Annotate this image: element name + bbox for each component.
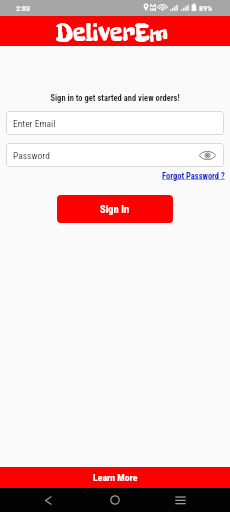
staticText: 2:03 bbox=[16, 4, 31, 13]
staticText: Password bbox=[13, 150, 50, 161]
button[interactable]: Home bbox=[103, 488, 127, 512]
button[interactable]: Password bbox=[6, 143, 224, 167]
button[interactable]: Learn More bbox=[0, 467, 230, 488]
staticText: Enter Email bbox=[13, 118, 56, 129]
staticText: Sign in to get started and view orders! bbox=[0, 93, 230, 103]
button[interactable]: Recent apps bbox=[168, 488, 192, 512]
staticText: Learn More bbox=[93, 472, 138, 483]
button[interactable]: Show password bbox=[198, 146, 216, 164]
button[interactable]: Enter Email bbox=[6, 111, 224, 135]
button[interactable]: Forgot Password ? bbox=[162, 171, 225, 181]
staticText: DeliverEm bbox=[56, 16, 168, 46]
staticText: 89% bbox=[199, 4, 213, 13]
button[interactable]: Back bbox=[36, 488, 60, 512]
button[interactable]: Sign In bbox=[57, 195, 173, 223]
staticText: Sign In bbox=[100, 203, 130, 215]
